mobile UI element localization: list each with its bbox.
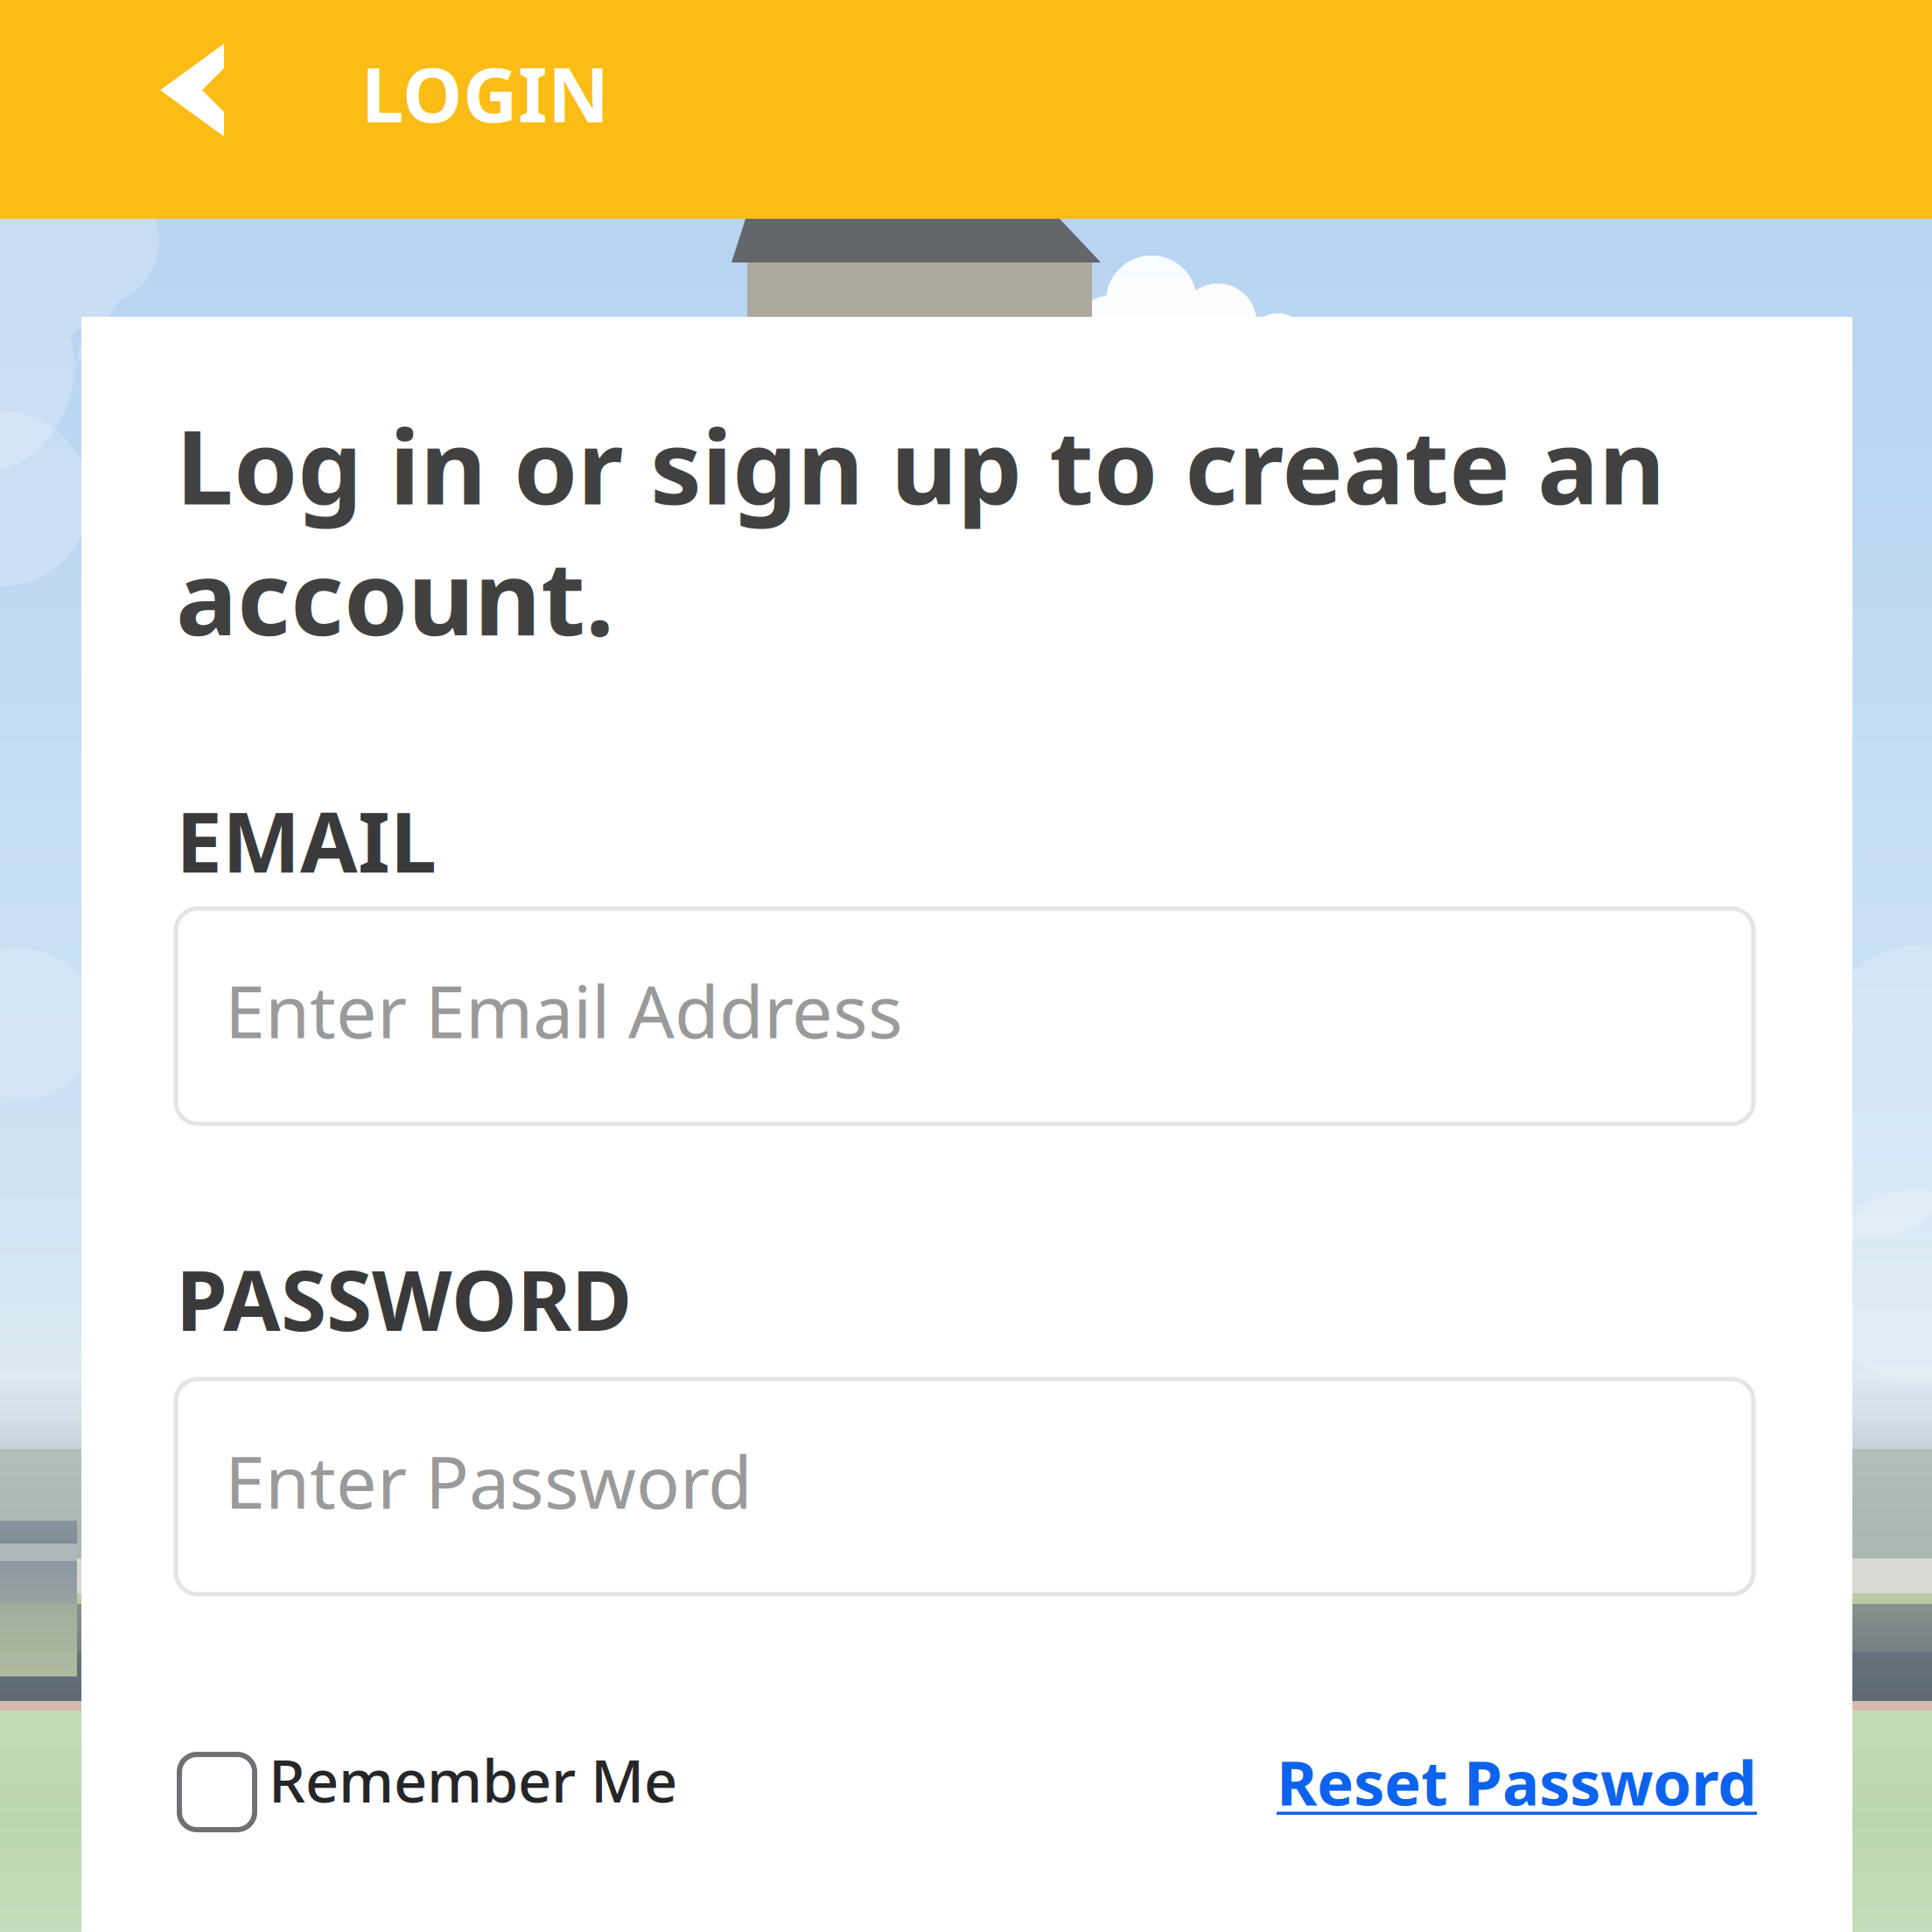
staticText: Reset Password bbox=[1277, 1740, 1757, 1823]
button[interactable]: Reset Password bbox=[1277, 1751, 1757, 1833]
staticText: LOGIN bbox=[361, 42, 609, 143]
staticText: PASSWORD bbox=[176, 1244, 632, 1354]
staticText: EMAIL bbox=[176, 785, 437, 895]
staticText: Log in or sign up to create an account. bbox=[176, 396, 1665, 664]
staticText: Enter Email Address bbox=[225, 962, 903, 1058]
staticText: Remember Me bbox=[269, 1741, 677, 1819]
staticText: Enter Password bbox=[225, 1433, 752, 1529]
button[interactable]: Back bbox=[160, 0, 300, 219]
button[interactable]: Remember Me bbox=[179, 1753, 677, 1831]
